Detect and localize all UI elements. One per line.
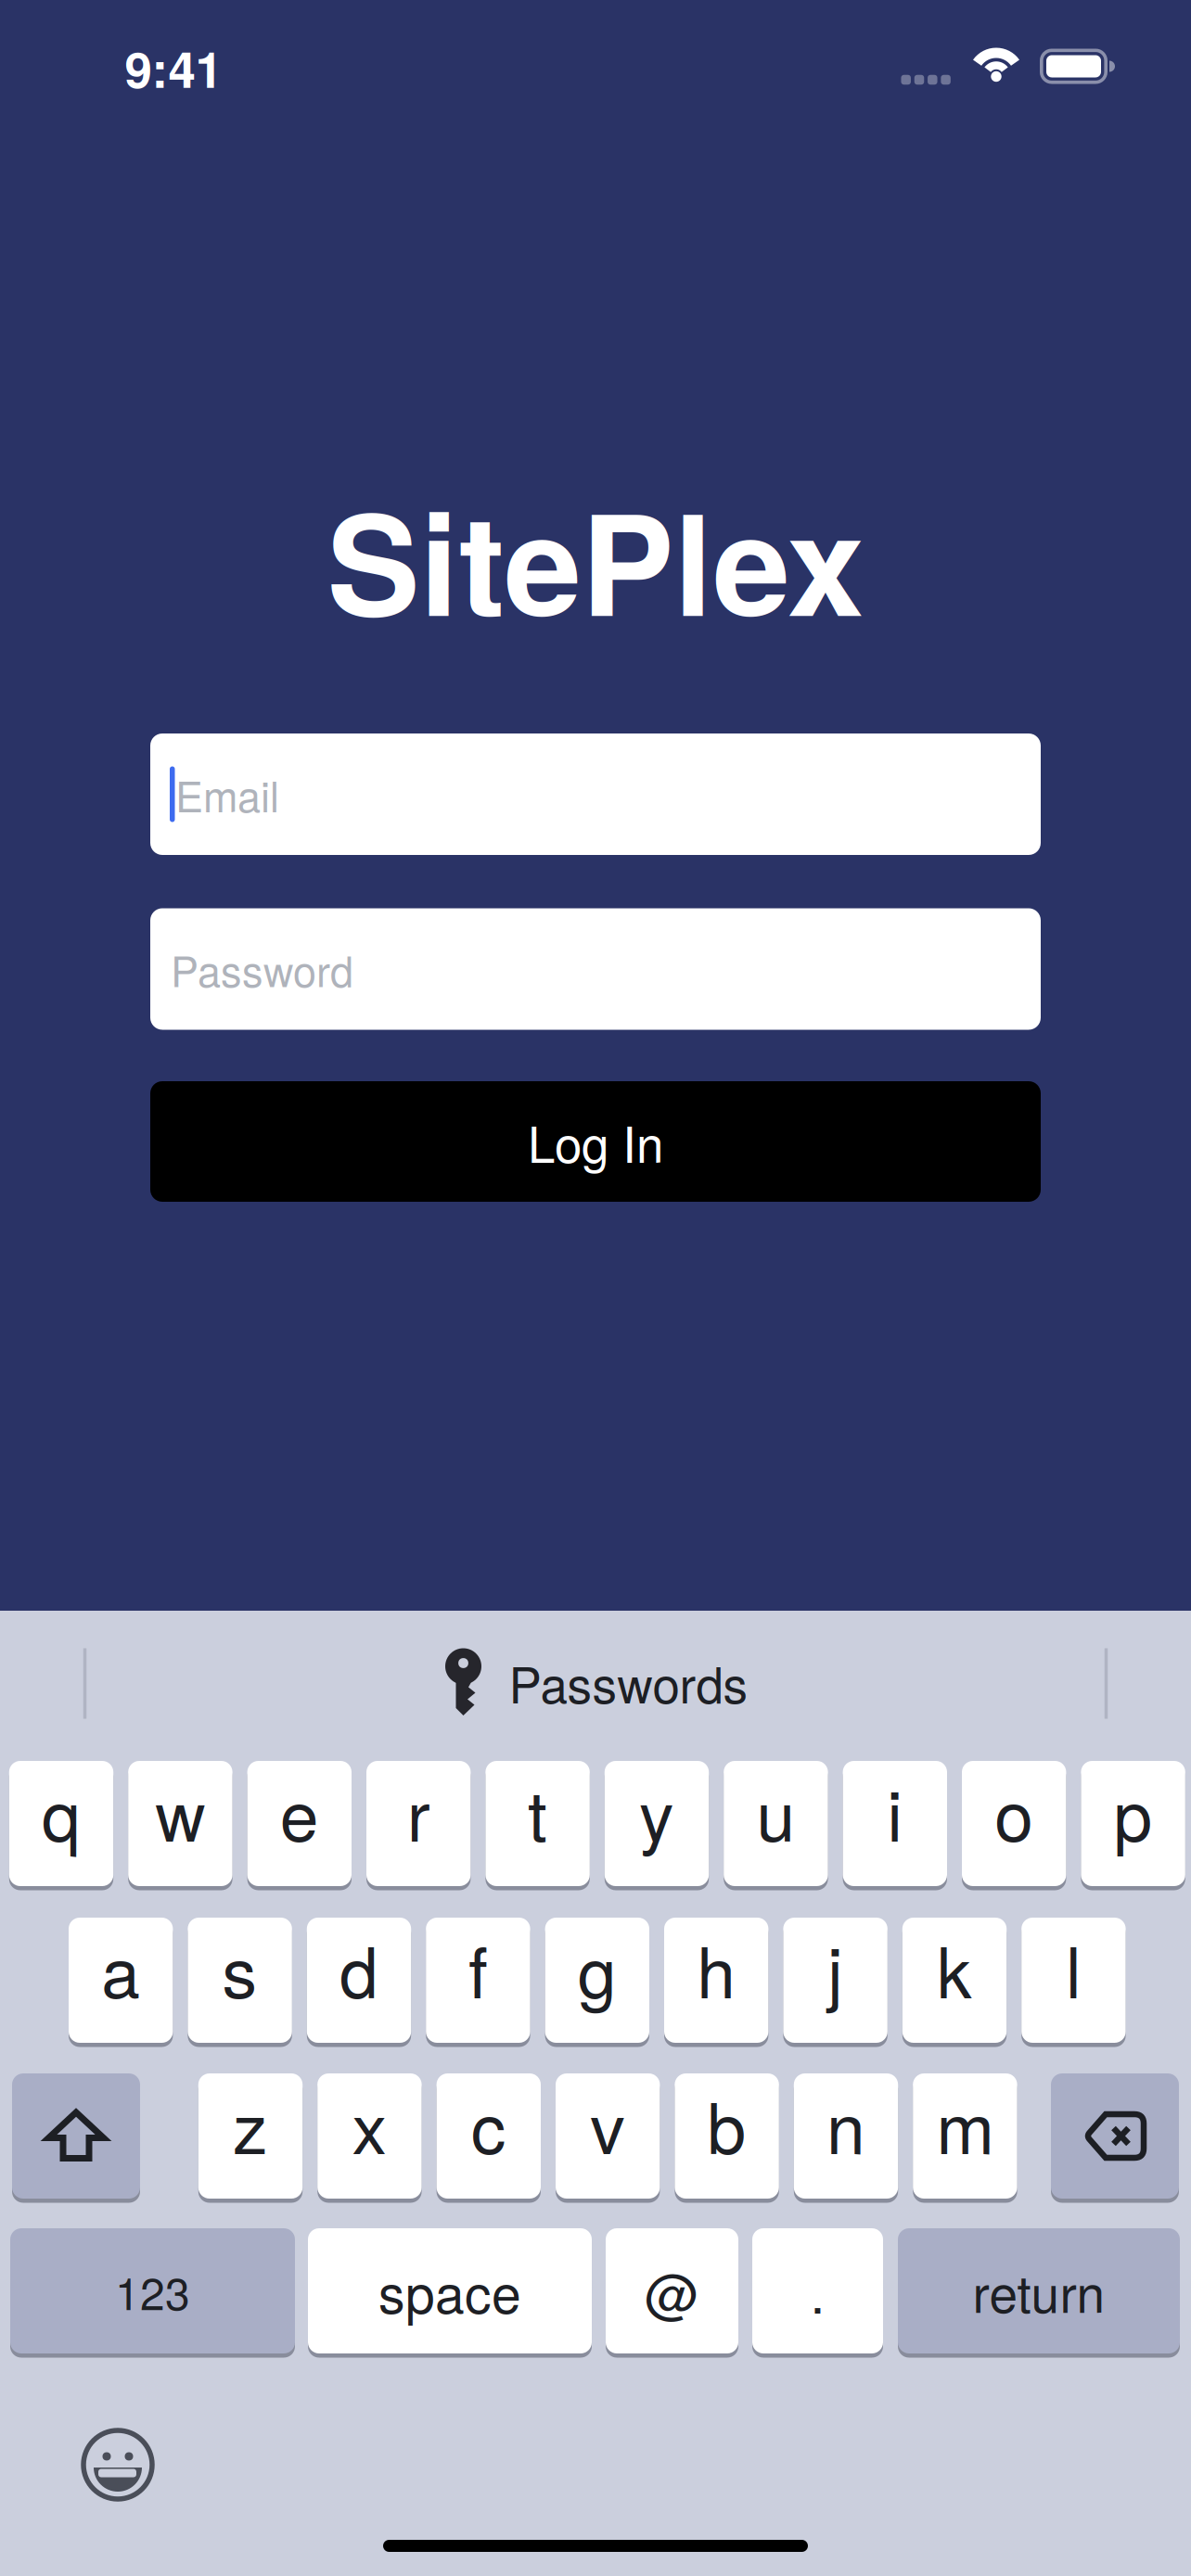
staticText: return xyxy=(973,2254,1105,2327)
staticText: q xyxy=(42,1762,81,1861)
button[interactable]: t xyxy=(485,1761,590,1886)
staticText: y xyxy=(639,1762,674,1861)
staticText: i xyxy=(887,1762,903,1861)
button[interactable]: q xyxy=(9,1761,113,1886)
button[interactable]: e xyxy=(247,1761,352,1886)
button[interactable]: y xyxy=(605,1761,709,1886)
staticText: j xyxy=(827,1918,843,2018)
staticText: f xyxy=(468,1918,488,2018)
button[interactable]: m xyxy=(913,2073,1017,2199)
staticText: 123 xyxy=(115,2259,190,2323)
staticText: l xyxy=(1066,1918,1081,2018)
button[interactable]: o xyxy=(962,1761,1066,1886)
button[interactable]: a xyxy=(69,1918,173,2043)
staticText: m xyxy=(936,2074,994,2174)
staticText: e xyxy=(280,1762,319,1861)
staticText: Password xyxy=(171,939,353,999)
button[interactable]: return xyxy=(898,2228,1180,2353)
button[interactable]: u xyxy=(724,1761,828,1886)
staticText: Passwords xyxy=(509,1647,748,1717)
button[interactable]: k xyxy=(902,1918,1007,2043)
staticText: p xyxy=(1114,1762,1153,1861)
staticText: Email xyxy=(175,764,279,824)
staticText: u xyxy=(756,1762,795,1861)
staticText: Log In xyxy=(528,1106,663,1177)
button[interactable]: 123 xyxy=(10,2228,295,2353)
staticText: b xyxy=(707,2074,746,2174)
button[interactable]: s xyxy=(188,1918,292,2043)
button[interactable]: Email xyxy=(150,733,1041,855)
button[interactable]: Emoji xyxy=(76,2423,160,2506)
staticText: o xyxy=(995,1762,1033,1861)
staticText: g xyxy=(578,1918,617,2018)
staticText: @ xyxy=(645,2252,699,2329)
button[interactable]: . xyxy=(752,2228,883,2353)
button[interactable]: v xyxy=(556,2073,660,2199)
staticText: t xyxy=(528,1762,547,1861)
button[interactable]: f xyxy=(426,1918,530,2043)
staticText: s xyxy=(222,1918,257,2018)
staticText: v xyxy=(590,2074,625,2174)
button[interactable]: x xyxy=(317,2073,422,2199)
staticText: d xyxy=(339,1918,378,2018)
staticText: space xyxy=(378,2253,521,2329)
button[interactable]: p xyxy=(1081,1761,1185,1886)
staticText: 9:41 xyxy=(125,33,222,103)
button[interactable]: @ xyxy=(606,2228,738,2353)
button[interactable]: Shift xyxy=(12,2073,140,2199)
button[interactable]: Password xyxy=(150,908,1041,1030)
staticText: z xyxy=(233,2074,268,2174)
button[interactable]: l xyxy=(1021,1918,1126,2043)
button[interactable]: Delete xyxy=(1051,2073,1179,2199)
staticText: r xyxy=(407,1762,430,1861)
staticText: h xyxy=(697,1918,736,2018)
button[interactable]: c xyxy=(437,2073,541,2199)
button[interactable]: d xyxy=(307,1918,411,2043)
staticText: a xyxy=(101,1918,140,2018)
button[interactable]: b xyxy=(675,2073,779,2199)
staticText: n xyxy=(826,2074,865,2174)
button[interactable]: Passwords xyxy=(443,1647,748,1717)
button[interactable]: i xyxy=(843,1761,947,1886)
staticText: c xyxy=(471,2074,506,2174)
staticText: SitePlex xyxy=(327,460,864,659)
staticText: x xyxy=(352,2074,387,2174)
button[interactable]: n xyxy=(794,2073,898,2199)
button[interactable]: space xyxy=(308,2228,592,2353)
staticText: k xyxy=(937,1918,972,2018)
staticText: w xyxy=(155,1762,205,1861)
button[interactable]: h xyxy=(664,1918,768,2043)
button[interactable]: g xyxy=(545,1918,649,2043)
button[interactable]: r xyxy=(366,1761,471,1886)
button[interactable]: z xyxy=(198,2073,303,2199)
staticText: . xyxy=(810,2253,825,2329)
button[interactable]: w xyxy=(128,1761,232,1886)
button[interactable]: Log In xyxy=(150,1081,1041,1202)
button[interactable]: j xyxy=(783,1918,887,2043)
